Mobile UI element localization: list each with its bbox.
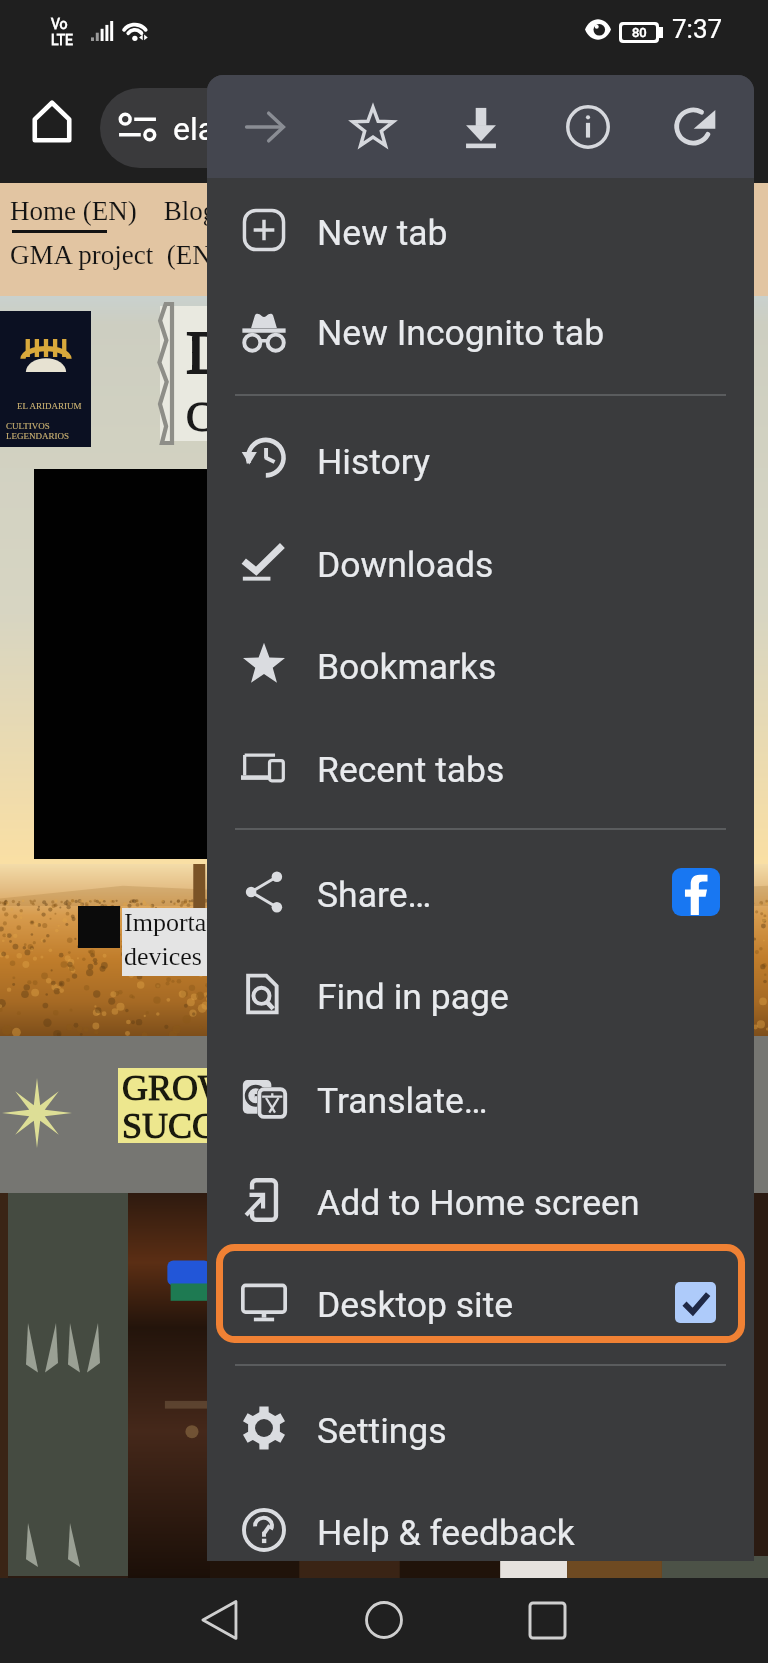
button[interactable]: Home (342, 1578, 426, 1662)
staticText: Translate… (317, 1080, 488, 1122)
button[interactable]: Translate… (207, 1047, 754, 1149)
staticText: Bookmarks (317, 646, 497, 688)
staticText: C (186, 394, 215, 441)
button[interactable]: Back (178, 1578, 262, 1662)
staticText: GROW SUCC (122, 1068, 232, 1146)
staticText: Add to Home screen (317, 1182, 640, 1224)
button[interactable]: Bookmark (335, 89, 411, 165)
button[interactable]: Downloads (207, 511, 754, 613)
button[interactable]: Page info (550, 89, 626, 165)
button[interactable]: Forward (227, 89, 303, 165)
button[interactable]: ela (100, 88, 420, 168)
staticText: History (317, 441, 430, 483)
button[interactable]: Share… (207, 841, 754, 943)
button[interactable]: Desktop site (207, 1251, 754, 1353)
button[interactable]: Home (8, 78, 95, 165)
staticText: Vo LTE (51, 16, 73, 48)
staticText: Downloads (317, 544, 494, 586)
staticText: Home (EN) Blog (EN) Contact (EN) (10, 196, 456, 226)
staticText: 80 (632, 25, 647, 40)
button[interactable]: Bookmarks (207, 613, 754, 715)
staticText: GMA project (EN) Events (EN) (10, 240, 396, 270)
staticText: New tab (317, 212, 448, 254)
staticText: Important (124, 908, 227, 937)
staticText: Help & feedback (317, 1512, 575, 1554)
staticText: Recent tabs (317, 749, 505, 791)
button[interactable]: Download (443, 89, 519, 165)
button[interactable]: Find in page (207, 943, 754, 1045)
staticText: Find in page (317, 976, 509, 1018)
staticText: EL ARIDARIUM (17, 401, 82, 411)
staticText: 7:37 (672, 14, 723, 44)
staticText: Settings (317, 1410, 447, 1452)
button[interactable]: Recents (505, 1578, 589, 1662)
button[interactable]: New Incognito tab (207, 279, 754, 381)
staticText: devices cli (124, 942, 235, 971)
staticText: New Incognito tab (317, 312, 605, 354)
button[interactable]: Settings (207, 1377, 754, 1479)
button[interactable]: New tab (207, 179, 754, 281)
button[interactable]: Recent tabs (207, 716, 754, 818)
button[interactable]: Reload (658, 89, 734, 165)
staticText: CULTIVOS LEGENDARIOS (6, 421, 97, 441)
staticText: D (186, 318, 231, 387)
staticText: Share… (317, 874, 432, 916)
staticText: ela (173, 110, 216, 148)
button[interactable]: Help & feedback (207, 1479, 754, 1561)
button[interactable]: Add to Home screen (207, 1149, 754, 1251)
button[interactable]: History (207, 408, 754, 510)
staticText: Desktop site (317, 1284, 514, 1326)
